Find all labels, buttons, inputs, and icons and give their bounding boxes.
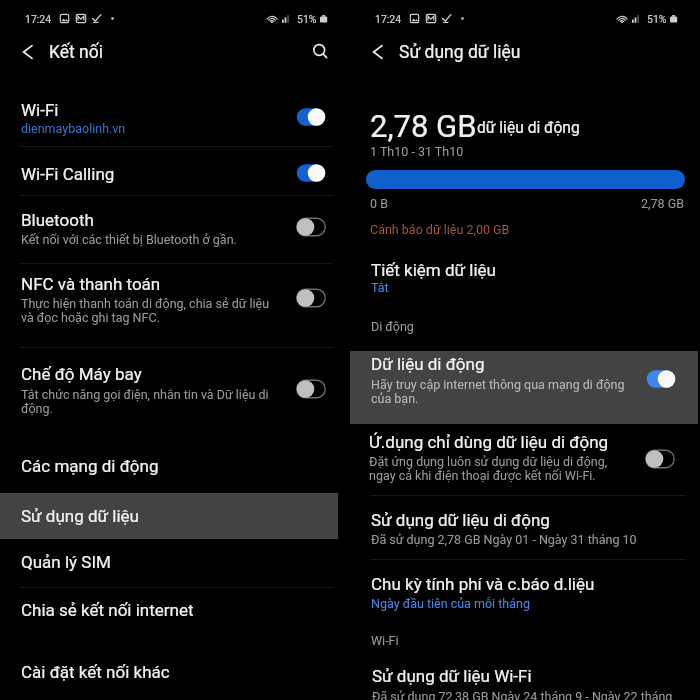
button[interactable]: Dữ liệu di động xyxy=(350,351,698,424)
button[interactable]: Bluetooth xyxy=(0,195,338,263)
button[interactable]: Wi-Fi Calling xyxy=(293,160,329,186)
staticText: Wi-Fi xyxy=(21,100,59,120)
staticText: Ứ.dụng chỉ dùng dữ liệu di động xyxy=(369,432,609,452)
staticText: Sử dụng dữ liệu Wi-Fi xyxy=(372,666,532,686)
staticText: Thực hiện thanh toán di động, chia sẻ dữ… xyxy=(21,296,270,311)
button[interactable]: Các mạng di động xyxy=(0,444,338,491)
staticText: Quản lý SIM xyxy=(21,552,111,572)
button[interactable]: Sử dụng dữ liệu Wi-Fi xyxy=(350,655,698,700)
staticText: dữ liệu di động xyxy=(477,119,580,137)
button[interactable]: Cài đặt kết nối khác xyxy=(0,648,338,695)
staticText: NFC và thanh toán xyxy=(21,274,161,294)
button[interactable]: Chế độ Máy bay xyxy=(293,376,329,402)
staticText: Các mạng di động xyxy=(21,456,159,476)
staticText: 51% xyxy=(297,13,317,25)
staticText: ngay cả khi điện thoại được kết nối Wi-F… xyxy=(369,468,596,483)
staticText: Đã sử dụng 72,38 GB Ngày 24 tháng 9 - Ng… xyxy=(372,689,673,700)
button[interactable]: Dữ liệu di động xyxy=(643,366,679,392)
staticText: Bluetooth xyxy=(21,210,94,230)
button[interactable]: NFC và thanh toán xyxy=(0,263,338,348)
button[interactable]: NFC và thanh toán xyxy=(293,285,329,311)
button[interactable]: Search xyxy=(305,36,337,68)
staticText: Tắt xyxy=(371,280,389,295)
staticText: Sử dụng dữ liệu xyxy=(399,42,521,63)
staticText: Ngày đầu tiên của mỗi tháng xyxy=(371,596,530,611)
staticText: 2,78 GB xyxy=(370,108,477,144)
staticText: Chia sẻ kết nối internet xyxy=(21,600,194,620)
button[interactable]: Navigate up xyxy=(362,36,394,68)
staticText: Chu kỳ tính phí và c.báo d.liệu xyxy=(371,574,595,594)
staticText: 17:24 xyxy=(375,13,402,25)
button[interactable]: Wi-Fi xyxy=(293,104,329,130)
staticText: Sử dụng dữ liệu xyxy=(21,506,139,526)
staticText: Đặt ứng dụng luôn sử dụng dữ liệu di độn… xyxy=(369,454,608,469)
button[interactable]: Wi-Fi Calling xyxy=(0,146,338,196)
staticText: Di động xyxy=(371,319,414,334)
staticText: 1 Th10 - 31 Th10 xyxy=(370,144,464,159)
staticText: Kết nối xyxy=(49,42,104,63)
button[interactable]: Ứng dụng chỉ dùng dữ liệu di động xyxy=(642,446,678,472)
button[interactable]: Navigate up xyxy=(12,36,44,68)
button[interactable]: Tiết kiệm dữ liệu xyxy=(350,248,698,303)
button[interactable]: Bluetooth xyxy=(293,214,329,240)
button[interactable]: Chu kỳ tính phí và c.báo d.liệu xyxy=(350,559,698,624)
button[interactable]: Sử dụng dữ liệu xyxy=(0,493,338,539)
staticText: và đọc hoặc ghi tag NFC. xyxy=(21,310,160,325)
button[interactable]: Chế độ Máy bay xyxy=(0,347,338,431)
button[interactable]: Ứ.dụng chỉ dùng dữ liệu di động xyxy=(350,424,698,495)
staticText: Hãy truy cập internet thông qua mạng di … xyxy=(371,377,625,392)
staticText: của bạn. xyxy=(371,391,419,406)
button[interactable]: Chia sẻ kết nối internet xyxy=(0,587,338,634)
staticText: 51% xyxy=(647,13,667,25)
staticText: 0 B xyxy=(370,196,388,211)
staticText: 17:24 xyxy=(25,13,52,25)
staticText: Cài đặt kết nối khác xyxy=(21,662,170,682)
staticText: Đã sử dụng 2,78 GB Ngày 01 - Ngày 31 thá… xyxy=(371,532,637,547)
staticText: 2,78 GB xyxy=(585,196,684,211)
staticText: Wi-Fi xyxy=(371,633,399,648)
staticText: Tắt chức năng gọi điện, nhắn tin và Dữ l… xyxy=(21,387,269,402)
staticText: dienmaybaolinh.vn xyxy=(21,121,126,136)
staticText: Wi-Fi Calling xyxy=(21,164,115,184)
button[interactable]: Sử dụng dữ liệu di động xyxy=(350,495,698,559)
staticText: Tiết kiệm dữ liệu xyxy=(371,260,496,280)
staticText: Sử dụng dữ liệu di động xyxy=(371,510,550,530)
button[interactable]: Quản lý SIM xyxy=(0,539,338,587)
staticText: Kết nối với các thiết bị Bluetooth ở gần… xyxy=(21,232,237,247)
staticText: Cánh báo dữ liệu 2,00 GB xyxy=(370,222,510,237)
button[interactable]: Wi-Fi xyxy=(0,95,338,146)
staticText: Dữ liệu di động xyxy=(371,354,485,374)
staticText: động. xyxy=(21,401,53,416)
staticText: Chế độ Máy bay xyxy=(21,364,142,384)
